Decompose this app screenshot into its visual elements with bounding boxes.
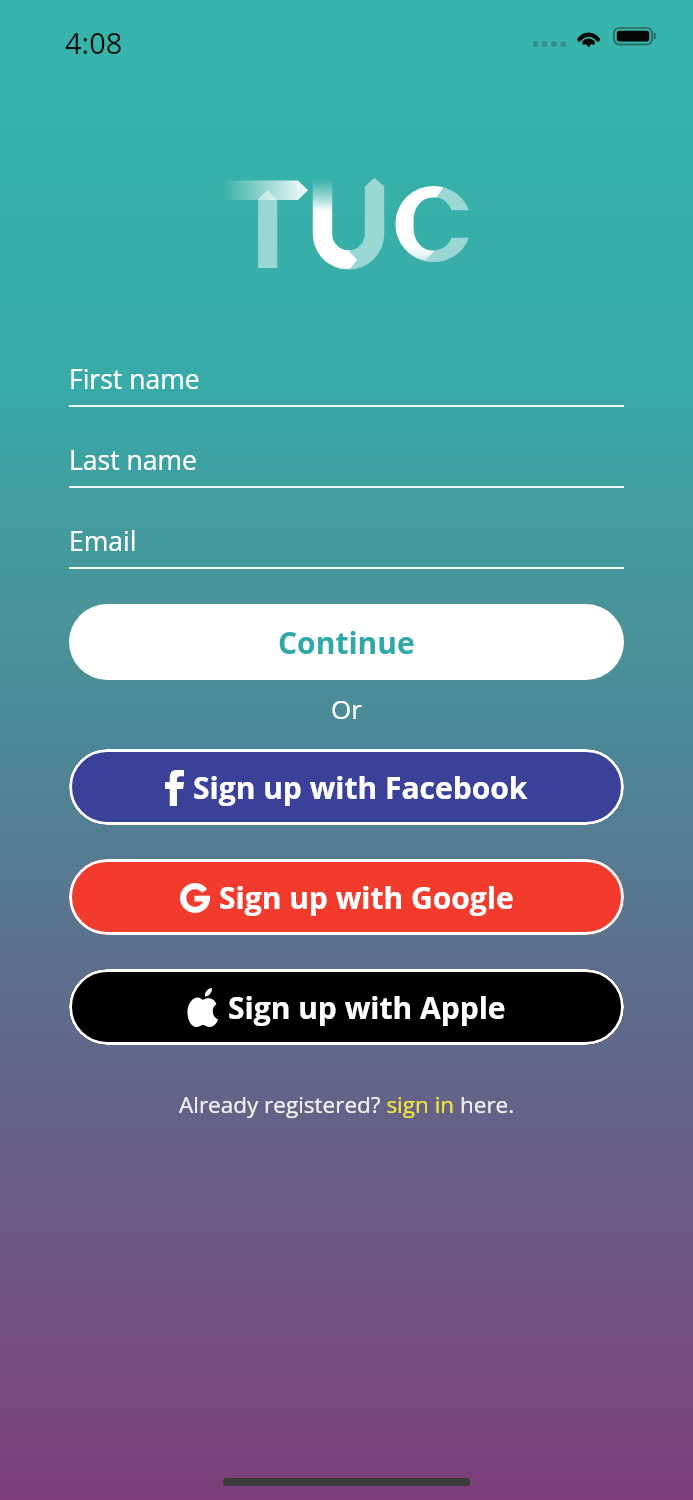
button[interactable]: Continue [69,604,624,680]
button[interactable]: Already registered? sign in here. [179,1089,515,1120]
staticText: Already registered? sign in here. [179,1089,515,1120]
staticText: Email [69,523,137,559]
staticText: Continue [278,622,415,663]
staticText: Sign up with Facebook [193,767,528,808]
staticText: Sign up with Apple [228,987,506,1028]
staticText: Last name [69,442,197,478]
button[interactable]: Sign up with Apple [69,969,624,1045]
staticText: Sign up with Google [219,877,514,918]
button[interactable]: Sign up with Google [69,859,624,935]
staticText: 4:08 [65,23,123,62]
button[interactable]: Last name [69,442,624,488]
button[interactable]: Sign up with Facebook [69,749,624,825]
staticText: First name [69,361,200,397]
button[interactable]: First name [69,361,624,407]
staticText: Or [331,691,362,726]
button[interactable]: Email [69,523,624,569]
